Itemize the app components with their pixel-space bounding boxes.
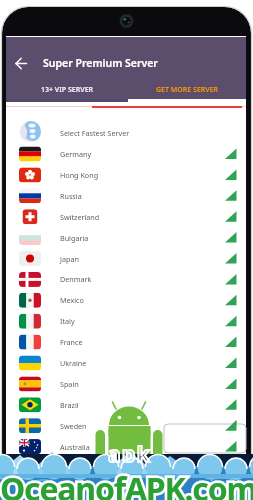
staticText: OceanofAPK.com xyxy=(0,467,253,500)
staticText: Italy xyxy=(60,316,75,326)
staticText: Germany xyxy=(60,149,92,159)
button[interactable] xyxy=(6,374,246,395)
button[interactable] xyxy=(6,144,246,165)
staticText: Bulgaria xyxy=(60,233,89,243)
staticText: Spain xyxy=(60,379,79,389)
button[interactable] xyxy=(6,185,246,206)
button[interactable] xyxy=(6,123,246,144)
staticText: Japan xyxy=(60,254,79,264)
staticText: Ukraine xyxy=(60,358,87,368)
staticText: Sweden xyxy=(60,421,87,431)
button[interactable] xyxy=(6,206,246,227)
staticText: Select Fastest Server xyxy=(60,128,130,138)
staticText: Brazil xyxy=(60,400,79,410)
button[interactable] xyxy=(6,165,246,186)
staticText: Australia xyxy=(60,442,90,452)
staticText: Mexico xyxy=(60,295,84,305)
button[interactable]: 13+ VIP SERVER xyxy=(6,79,128,101)
button[interactable]: GET MORE SERVER xyxy=(128,79,247,101)
button[interactable] xyxy=(6,332,246,353)
button[interactable] xyxy=(6,248,246,269)
staticText: France xyxy=(60,337,83,347)
staticText: OceanofAPK.com xyxy=(0,467,253,500)
staticText: Super Premium Server xyxy=(43,56,158,70)
button[interactable] xyxy=(6,394,246,415)
staticText: Switzerland xyxy=(60,212,100,222)
staticText: Hong Kong xyxy=(60,170,99,180)
staticText: GET MORE SERVER xyxy=(156,85,219,95)
staticText: Russia xyxy=(60,191,82,201)
staticText: apk xyxy=(108,440,152,463)
button[interactable] xyxy=(6,436,246,457)
button[interactable] xyxy=(6,415,246,436)
button[interactable] xyxy=(6,227,246,248)
staticText: Denmark xyxy=(60,274,92,284)
button[interactable] xyxy=(6,290,246,311)
button[interactable] xyxy=(6,353,246,374)
staticText: 13+ VIP SERVER xyxy=(41,85,94,95)
button[interactable] xyxy=(6,269,246,290)
button[interactable] xyxy=(6,311,246,332)
button[interactable] xyxy=(10,50,36,76)
